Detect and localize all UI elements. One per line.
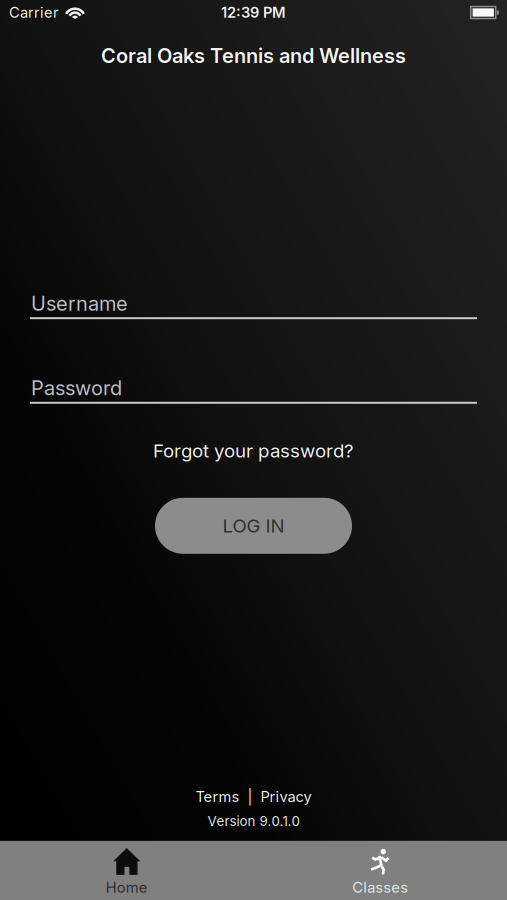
staticText: Coral Oaks Tennis and Wellness <box>101 44 406 68</box>
staticText: 12:39 PM <box>221 4 286 21</box>
staticText: Version 9.0.1.0 <box>207 813 299 829</box>
button[interactable]: Classes <box>253 841 507 900</box>
button[interactable]: Password <box>0 376 507 404</box>
button[interactable]: Username <box>0 292 507 319</box>
button[interactable]: Home <box>0 841 253 900</box>
staticText: Password <box>31 376 122 400</box>
staticText: Forgot your password? <box>153 440 354 462</box>
staticText: Terms <box>195 788 239 805</box>
staticText: Username <box>31 292 128 315</box>
staticText: Carrier <box>9 4 59 21</box>
button[interactable]: LOG IN <box>155 498 352 554</box>
staticText: Classes <box>352 879 408 896</box>
button[interactable]: Forgot your password? <box>153 440 354 462</box>
staticText: | <box>247 788 252 805</box>
staticText: Home <box>106 879 148 896</box>
button[interactable]: Terms <box>195 788 239 805</box>
staticText: Privacy <box>260 788 311 805</box>
staticText: LOG IN <box>222 515 284 537</box>
button[interactable]: Privacy <box>260 788 311 805</box>
